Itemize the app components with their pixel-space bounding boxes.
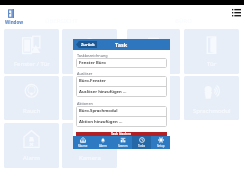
staticText: Fenster / Tür	[14, 60, 50, 68]
staticText: Licht	[83, 60, 97, 68]
staticText: Taskbezeichnung	[77, 53, 108, 58]
button[interactable]: Aktion hinzufügen ...	[76, 117, 167, 127]
staticText: Auslöser	[77, 71, 93, 76]
staticText: Heizung	[78, 107, 102, 115]
staticText: Büro.Sprachmodul	[79, 108, 118, 114]
button[interactable]: Setup	[151, 136, 170, 149]
button[interactable]: Sprachmodul	[184, 76, 239, 120]
staticText: Setup	[157, 144, 165, 148]
button[interactable]: Auslöser hinzufügen ...	[76, 87, 167, 97]
staticText: Büro.Fenster	[79, 78, 106, 84]
button[interactable]: Alarm	[93, 136, 113, 149]
button[interactable]: Licht	[127, 76, 180, 120]
staticText: Kamera	[79, 154, 101, 162]
button[interactable]: Fenster / Tür	[4, 29, 59, 74]
button[interactable]: Fenster Büro	[76, 58, 167, 68]
button[interactable]: Räume	[73, 136, 93, 149]
button[interactable]: Heizung	[62, 76, 117, 120]
staticText: Task löschen	[111, 132, 132, 136]
staticText: Zurück	[81, 42, 95, 47]
button[interactable]: Büro.Sprachmodul	[76, 106, 167, 116]
staticText: Task	[115, 41, 128, 48]
staticText: Fenster	[143, 60, 165, 68]
staticText: Sprachmodul	[193, 107, 231, 115]
button[interactable]: Szenen	[113, 136, 132, 149]
button[interactable]: Zurück	[76, 41, 97, 48]
staticText: Szenen	[118, 144, 128, 148]
button[interactable]: Fenster	[127, 29, 180, 74]
staticText: Auslöser hinzufügen ...	[79, 89, 127, 95]
button[interactable]: Tür	[184, 29, 239, 74]
button[interactable]: Menu	[230, 5, 243, 18]
staticText: Fenster Büro	[79, 60, 106, 66]
button[interactable]: Büro.Fenster	[76, 76, 167, 86]
staticText: Tasks	[138, 144, 146, 148]
button[interactable]: Licht	[62, 29, 117, 74]
staticText: Räume	[78, 144, 88, 148]
staticText: Rauch	[23, 107, 41, 115]
staticText: Alarm	[99, 144, 107, 148]
staticText: Window	[5, 19, 24, 25]
staticText: Tür	[207, 60, 217, 68]
staticText: Aktionen	[77, 101, 93, 106]
staticText: Aktion hinzufügen ...	[79, 119, 123, 125]
button[interactable]: Kamera	[62, 123, 117, 168]
staticText: Alarm	[23, 154, 40, 162]
button[interactable]: Tasks	[132, 136, 151, 149]
button[interactable]: Task löschen	[76, 132, 167, 136]
